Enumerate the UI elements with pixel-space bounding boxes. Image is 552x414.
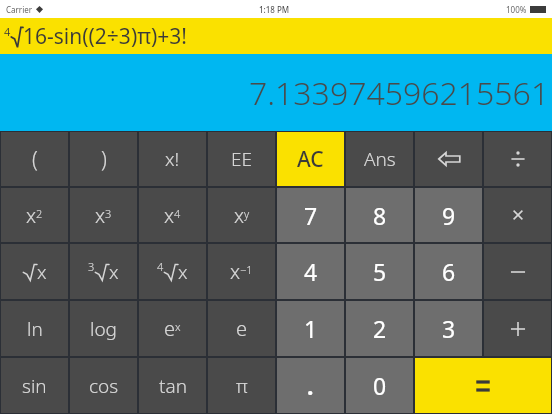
- staticText: 4: [157, 259, 164, 274]
- button[interactable]: 8: [346, 188, 413, 242]
- button[interactable]: log: [70, 301, 137, 356]
- staticText: x!: [165, 146, 180, 172]
- staticText: tan: [159, 373, 187, 399]
- staticText: EE: [231, 146, 253, 172]
- staticText: 3: [88, 259, 95, 274]
- button[interactable]: xy: [208, 188, 275, 242]
- staticText: Carrier: [6, 4, 33, 15]
- button[interactable]: x−1: [208, 244, 275, 299]
- button[interactable]: ln: [1, 301, 68, 356]
- button[interactable]: 6: [415, 244, 482, 299]
- button[interactable]: ex: [139, 301, 206, 356]
- staticText: xy: [234, 202, 250, 229]
- staticText: π: [236, 373, 248, 399]
- button[interactable]: Multiply: [484, 188, 551, 242]
- staticText: e: [236, 315, 248, 342]
- staticText: (: [32, 145, 38, 174]
- button[interactable]: EE: [208, 132, 275, 186]
- staticText: Ans: [364, 146, 396, 172]
- button[interactable]: (: [1, 132, 68, 186]
- staticText: 2: [373, 313, 387, 344]
- button[interactable]: x!: [139, 132, 206, 186]
- staticText: 1:18 PM: [259, 4, 290, 15]
- button[interactable]: 5: [346, 244, 413, 299]
- staticText: 8: [373, 200, 387, 231]
- staticText: x−1: [230, 258, 253, 285]
- staticText: 1: [304, 313, 318, 344]
- staticText: x: [109, 259, 119, 285]
- staticText: 0: [373, 370, 387, 401]
- button[interactable]: 7: [277, 188, 344, 242]
- button[interactable]: Cube root: [70, 244, 137, 299]
- button[interactable]: Square root: [1, 244, 68, 299]
- staticText: AC: [297, 145, 324, 174]
- button[interactable]: Divide: [484, 132, 551, 186]
- button[interactable]: Backspace: [415, 132, 482, 186]
- staticText: x4: [164, 202, 181, 229]
- staticText: ln: [27, 316, 43, 342]
- button[interactable]: ): [70, 132, 137, 186]
- staticText: 4: [304, 256, 318, 287]
- staticText: x: [37, 259, 47, 285]
- staticText: x3: [95, 202, 112, 229]
- button[interactable]: 9: [415, 188, 482, 242]
- staticText: 5: [373, 256, 387, 287]
- staticText: sin: [22, 373, 47, 399]
- button[interactable]: Subtract: [484, 244, 551, 299]
- button[interactable]: 3: [415, 301, 482, 356]
- button[interactable]: .: [277, 358, 344, 413]
- button[interactable]: π: [208, 358, 275, 413]
- staticText: cos: [89, 373, 119, 399]
- staticText: 4: [4, 24, 11, 39]
- staticText: 3: [442, 313, 456, 344]
- button[interactable]: e: [208, 301, 275, 356]
- staticText: .: [307, 370, 314, 401]
- staticText: ex: [164, 315, 181, 342]
- button[interactable]: 0: [346, 358, 413, 413]
- staticText: 100%: [506, 4, 527, 15]
- staticText: 6: [442, 256, 456, 287]
- button[interactable]: Ans: [346, 132, 413, 186]
- button[interactable]: cos: [70, 358, 137, 413]
- staticText: 7.133974596215561: [249, 71, 550, 115]
- button[interactable]: 4: [277, 244, 344, 299]
- staticText: x2: [26, 202, 43, 229]
- button[interactable]: x4: [139, 188, 206, 242]
- button[interactable]: x2: [1, 188, 68, 242]
- button[interactable]: Equals: [415, 358, 551, 413]
- button[interactable]: tan: [139, 358, 206, 413]
- staticText: ): [101, 145, 107, 174]
- staticText: log: [90, 316, 117, 342]
- staticText: 7: [304, 200, 318, 231]
- button[interactable]: x3: [70, 188, 137, 242]
- staticText: 16-sin((2÷3)π)+3!: [23, 22, 187, 51]
- button[interactable]: Add: [484, 301, 551, 356]
- staticText: 9: [442, 200, 456, 231]
- button[interactable]: 2: [346, 301, 413, 356]
- button[interactable]: AC: [277, 132, 344, 186]
- button[interactable]: Fourth root: [139, 244, 206, 299]
- staticText: x: [178, 259, 188, 285]
- button[interactable]: sin: [1, 358, 68, 413]
- button[interactable]: 1: [277, 301, 344, 356]
